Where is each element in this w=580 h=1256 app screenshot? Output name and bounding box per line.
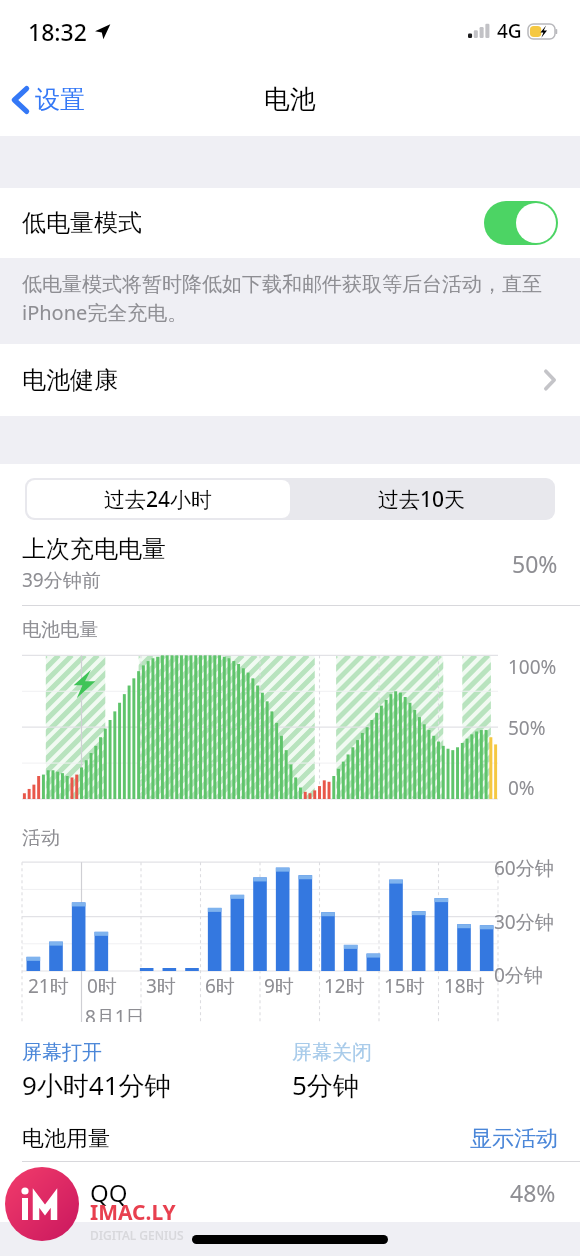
- staticText: 21时: [28, 973, 69, 999]
- staticText: 电池用量: [22, 1125, 110, 1153]
- staticText: 活动: [22, 826, 60, 850]
- staticText: 5分钟: [292, 1067, 359, 1103]
- staticText: 4G: [497, 18, 522, 44]
- staticText: 上次充电电量: [22, 534, 166, 564]
- button[interactable]: 设置: [0, 78, 99, 121]
- button[interactable]: 显示活动: [470, 1125, 558, 1153]
- staticText: 50%: [512, 548, 558, 579]
- staticText: QQ: [90, 1176, 128, 1209]
- staticText: DIGITAL GENIUS: [90, 1227, 184, 1243]
- staticText: 0时: [87, 973, 117, 999]
- staticText: 15时: [384, 973, 425, 999]
- staticText: 39分钟前: [22, 567, 101, 593]
- staticText: 60分钟: [494, 855, 554, 881]
- button[interactable]: 电池健康: [0, 344, 580, 416]
- staticText: 9小时41分钟: [22, 1067, 171, 1103]
- staticText: 电池健康: [22, 365, 118, 395]
- staticText: 3时: [146, 973, 176, 999]
- staticText: 30分钟: [494, 909, 554, 935]
- staticText: 过去10天: [378, 485, 466, 514]
- staticText: 18时: [444, 973, 485, 999]
- staticText: 屏幕打开: [22, 1040, 102, 1065]
- staticText: 18:32: [28, 16, 87, 47]
- staticText: 低电量模式将暂时降低如下载和邮件获取等后台活动，直至iPhone完全充电。: [22, 272, 550, 326]
- staticText: 低电量模式: [22, 208, 142, 238]
- button[interactable]: 低电量模式: [0, 188, 580, 258]
- staticText: 6时: [205, 973, 235, 999]
- button[interactable]: 过去10天: [290, 480, 553, 518]
- staticText: 0%: [508, 775, 535, 801]
- staticText: 9时: [264, 973, 294, 999]
- staticText: 100%: [508, 654, 557, 680]
- staticText: 50%: [508, 715, 546, 741]
- button[interactable]: [484, 201, 558, 245]
- staticText: 0分钟: [494, 962, 543, 988]
- button[interactable]: 过去24小时: [27, 480, 290, 518]
- staticText: 设置: [35, 84, 85, 115]
- staticText: IMAC.LY: [90, 1198, 176, 1227]
- staticText: 屏幕关闭: [292, 1040, 372, 1065]
- staticText: 显示活动: [470, 1125, 558, 1153]
- staticText: 电池: [264, 83, 316, 116]
- staticText: 电池电量: [22, 618, 98, 642]
- staticText: 48%: [510, 1177, 556, 1208]
- staticText: 12时: [324, 973, 365, 999]
- staticText: 过去24小时: [104, 485, 213, 514]
- staticText: 8月1日: [85, 1004, 145, 1022]
